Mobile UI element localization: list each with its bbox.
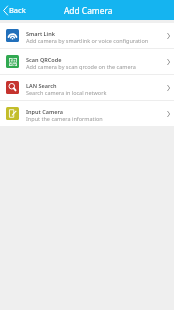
staticText: Input Camera bbox=[26, 108, 63, 115]
staticText: LAN Search bbox=[26, 82, 57, 89]
button[interactable]: Back bbox=[0, 0, 30, 20]
button[interactable]: Input Camera bbox=[0, 101, 174, 126]
staticText: Add Camera bbox=[64, 5, 113, 16]
button[interactable]: LAN Search bbox=[0, 75, 174, 100]
staticText: Add camera by smartlink or voice configu… bbox=[26, 37, 149, 44]
button[interactable]: Scan QRCode bbox=[0, 49, 174, 74]
staticText: Add camera by scan qrcode on the camera bbox=[26, 63, 136, 70]
button[interactable]: Smart Link bbox=[0, 23, 174, 48]
staticText: Smart Link bbox=[26, 30, 55, 37]
staticText: Back bbox=[9, 5, 26, 15]
staticText: Search camera in local network bbox=[26, 89, 107, 96]
staticText: Scan QRCode bbox=[26, 56, 62, 63]
staticText: Input the camera information bbox=[26, 115, 103, 122]
